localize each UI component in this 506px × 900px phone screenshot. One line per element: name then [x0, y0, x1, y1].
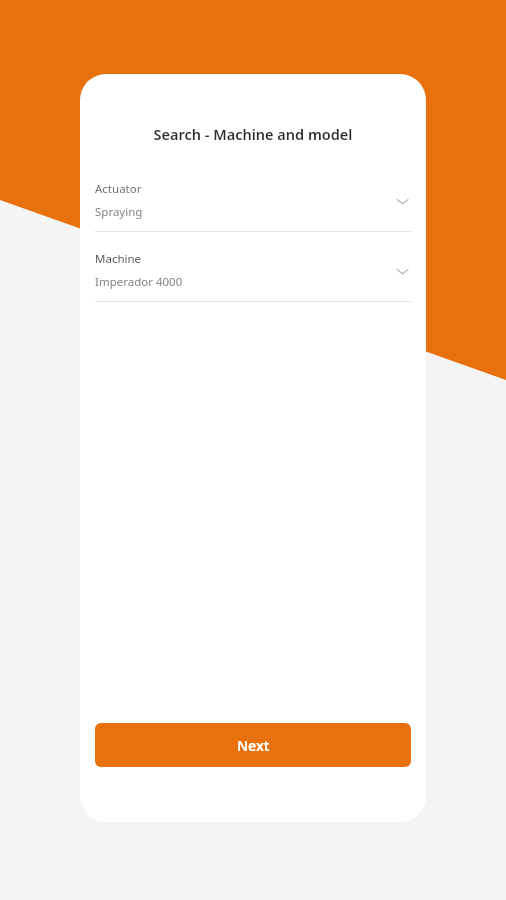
- staticText: Next: [237, 736, 270, 755]
- button[interactable]: Next: [95, 723, 411, 767]
- other: Expand Machine: [393, 262, 411, 280]
- button[interactable]: Actuator: [95, 181, 411, 232]
- button[interactable]: Machine: [95, 251, 411, 302]
- staticText: Actuator: [95, 181, 142, 197]
- staticText: Machine: [95, 251, 142, 267]
- staticText: Spraying: [95, 204, 143, 220]
- staticText: Search - Machine and model: [80, 124, 426, 144]
- staticText: Imperador 4000: [95, 274, 183, 290]
- other: Expand Actuator: [393, 192, 411, 210]
